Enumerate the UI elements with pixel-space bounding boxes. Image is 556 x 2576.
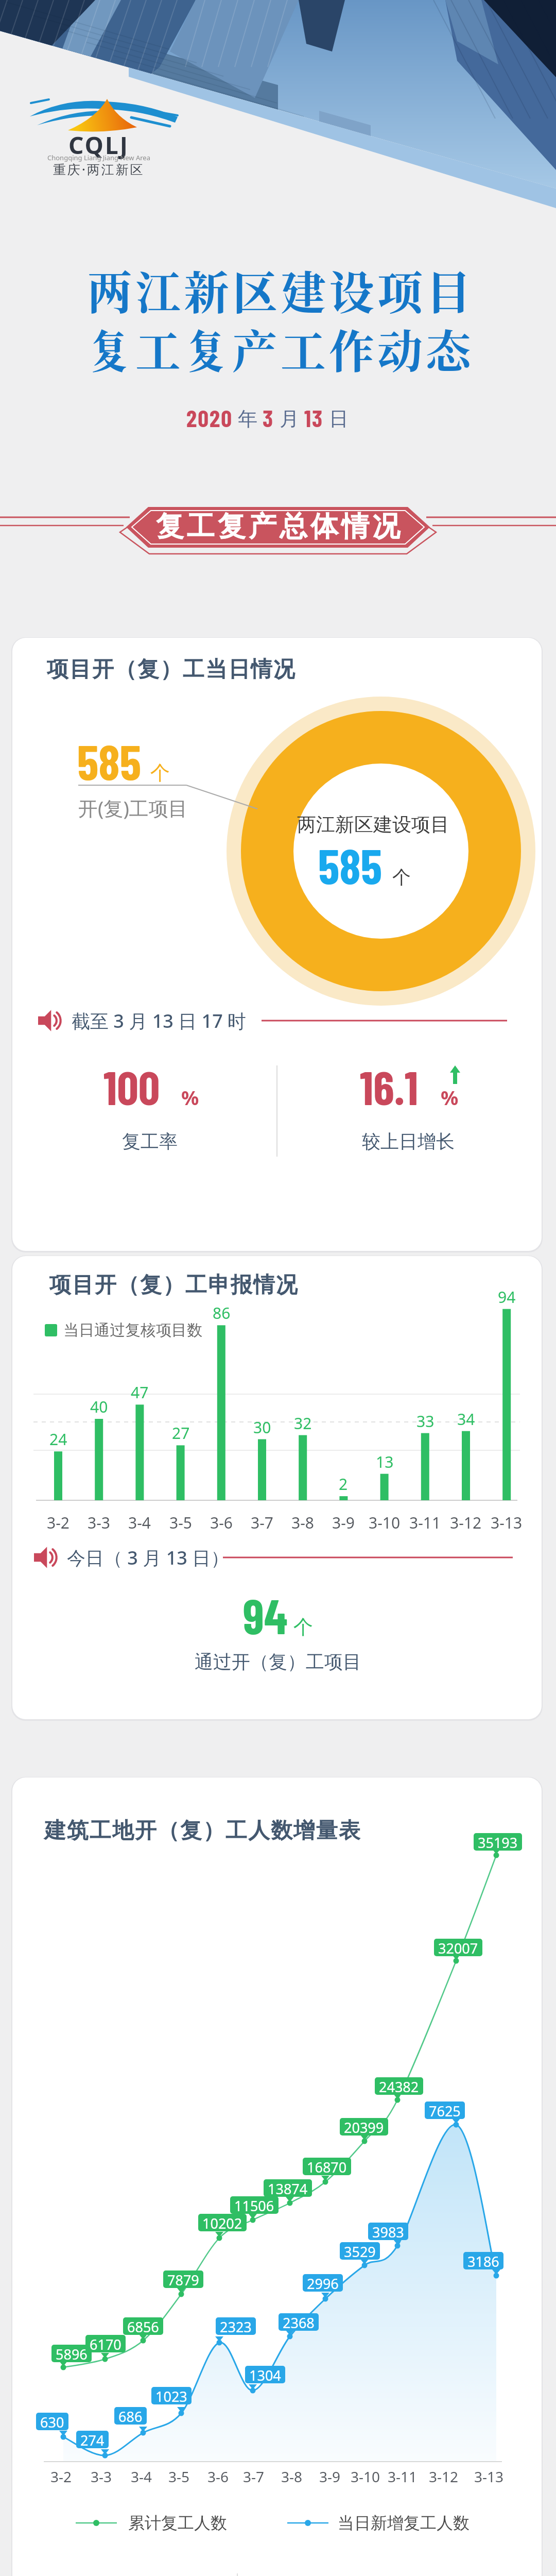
staticText: 今日（ 3 月 13 日）: [67, 1545, 230, 1570]
staticText: 24382: [379, 2077, 419, 2095]
staticText: 开(复)工项目: [78, 794, 188, 821]
staticText: 20399: [344, 2118, 384, 2136]
staticText: 585: [77, 732, 141, 790]
staticText: 3-10: [351, 2467, 380, 2486]
staticText: %: [181, 1084, 199, 1111]
staticText: 建筑工地开（复）工人数增量表: [44, 1817, 361, 1844]
staticText: 34: [457, 1409, 475, 1430]
staticText: 复工复产总体情况: [154, 509, 402, 544]
staticText: 47: [131, 1382, 149, 1403]
staticText: 3-4: [128, 1512, 151, 1533]
staticText: 当日通过复核项目数: [63, 1320, 202, 1340]
staticText: 3-5: [169, 1512, 192, 1533]
staticText: 3-8: [291, 1512, 314, 1533]
staticText: 274: [80, 2431, 105, 2448]
staticText: 重庆·两江新区: [53, 160, 145, 178]
staticText: 13: [304, 403, 324, 432]
staticText: 100: [103, 1058, 160, 1114]
staticText: 1304: [249, 2366, 281, 2383]
staticText: 两江新区建设项目: [87, 257, 475, 322]
staticText: 3-3: [88, 1512, 110, 1533]
staticText: 11506: [234, 2196, 274, 2214]
staticText: 3-7: [251, 1512, 273, 1533]
staticText: 94: [498, 1286, 516, 1308]
staticText: 累计复工人数: [128, 2513, 227, 2533]
staticText: 月: [274, 404, 304, 431]
staticText: 1023: [155, 2387, 187, 2404]
staticText: 个: [392, 866, 411, 889]
staticText: 复工复产工作动态: [87, 316, 475, 381]
staticText: 3-9: [319, 2467, 341, 2486]
staticText: 3-9: [332, 1512, 355, 1533]
staticText: 3-13: [474, 2467, 504, 2486]
staticText: 年: [233, 404, 263, 431]
button[interactable]: [12, 638, 542, 1251]
staticText: 3-4: [131, 2467, 152, 2486]
staticText: 3-12: [450, 1512, 482, 1533]
staticText: 86: [213, 1302, 231, 1324]
staticText: 2368: [283, 2313, 315, 2331]
staticText: 3-2: [47, 1512, 69, 1533]
staticText: 复工率: [122, 1130, 178, 1153]
staticText: 686: [118, 2407, 143, 2425]
staticText: 3-11: [409, 1512, 441, 1533]
staticText: 3-2: [50, 2467, 72, 2486]
staticText: 3-5: [168, 2467, 190, 2486]
staticText: 3-12: [429, 2467, 459, 2486]
staticText: 3-6: [207, 2467, 229, 2486]
staticText: 7879: [167, 2270, 199, 2288]
button[interactable]: [12, 1256, 542, 1719]
staticText: 截至 3 月 13 日 17 时: [72, 1008, 247, 1033]
staticText: 7625: [429, 2102, 461, 2119]
staticText: 3529: [344, 2242, 376, 2260]
staticText: 35193: [478, 1833, 518, 1851]
staticText: 3-10: [369, 1512, 401, 1533]
staticText: 个: [293, 1615, 313, 1639]
staticText: 通过开（复）工项目: [195, 1650, 361, 1673]
staticText: 日: [324, 404, 349, 431]
staticText: 16.1: [360, 1058, 419, 1114]
staticText: 585: [318, 836, 382, 894]
button[interactable]: [12, 1777, 542, 2576]
staticText: 2: [339, 1473, 348, 1495]
staticText: 3-6: [210, 1512, 233, 1533]
staticText: 2323: [220, 2317, 252, 2335]
staticText: 27: [172, 1422, 190, 1444]
staticText: 项目开（复）工当日情况: [46, 656, 296, 683]
staticText: 630: [40, 2413, 64, 2430]
staticText: 3: [263, 403, 274, 432]
staticText: 3983: [372, 2223, 404, 2240]
staticText: 两江新区建设项目: [297, 812, 449, 837]
staticText: 3-11: [388, 2467, 418, 2486]
staticText: 2020: [186, 403, 233, 432]
staticText: 13: [376, 1451, 394, 1472]
staticText: 32: [294, 1413, 312, 1434]
staticText: 24: [49, 1429, 67, 1450]
staticText: 6856: [127, 2317, 159, 2335]
staticText: %: [441, 1084, 459, 1111]
staticText: 30: [253, 1417, 271, 1438]
staticText: 当日新增复工人数: [338, 2513, 470, 2533]
staticText: Chongqing Liang Jiang New Area: [47, 153, 150, 162]
staticText: 3-7: [243, 2467, 265, 2486]
staticText: 6170: [90, 2335, 121, 2352]
staticText: 10202: [202, 2214, 242, 2231]
staticText: 较上日增长: [362, 1130, 455, 1153]
staticText: 3186: [467, 2252, 499, 2269]
staticText: 5896: [56, 2345, 88, 2362]
staticText: 33: [416, 1411, 435, 1432]
staticText: 13874: [268, 2179, 308, 2197]
staticText: 个: [150, 760, 170, 785]
staticText: 3-13: [491, 1512, 523, 1533]
staticText: 32007: [438, 1939, 478, 1956]
staticText: 2996: [307, 2274, 339, 2292]
staticText: CQLJ: [68, 129, 129, 161]
staticText: 3-8: [281, 2467, 303, 2486]
staticText: 40: [90, 1396, 108, 1417]
staticText: 16870: [307, 2158, 347, 2175]
staticText: 项目开（复）工申报情况: [49, 1272, 298, 1299]
staticText: 94: [243, 1586, 288, 1644]
staticText: 3-3: [91, 2467, 112, 2486]
